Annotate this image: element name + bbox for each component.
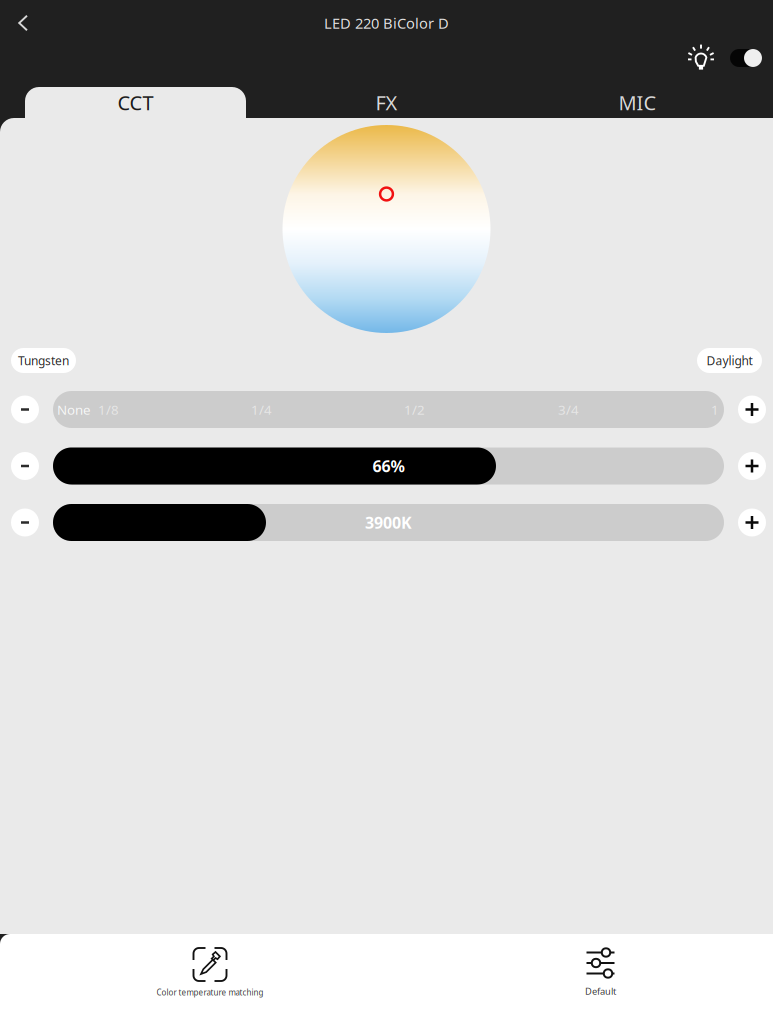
staticText: 3/4 xyxy=(558,401,579,418)
button[interactable]: Color temperature matching xyxy=(0,934,420,1030)
button[interactable]: FX xyxy=(246,87,527,118)
button[interactable]: 66% xyxy=(53,447,724,484)
staticText: FX xyxy=(375,89,397,116)
staticText: 1/8 xyxy=(98,401,119,418)
staticText: Default xyxy=(585,985,616,997)
staticText: CCT xyxy=(117,89,153,116)
staticText: 1/2 xyxy=(404,401,425,418)
button[interactable]: Light xyxy=(688,44,714,72)
staticText: Color temperature matching xyxy=(156,987,263,998)
button[interactable]: None xyxy=(53,391,724,428)
button[interactable]: Default xyxy=(420,934,773,1030)
button[interactable]: Power xyxy=(730,49,762,67)
button[interactable]: Decrease xyxy=(11,395,39,423)
button[interactable]: Decrease xyxy=(11,508,39,536)
staticText: Daylight xyxy=(706,352,752,368)
button[interactable]: Decrease xyxy=(11,452,39,480)
staticText: None xyxy=(57,401,91,418)
staticText: LED 220 BiColor D xyxy=(324,13,449,33)
button[interactable]: Increase xyxy=(738,395,766,423)
staticText: 1/4 xyxy=(251,401,272,418)
button[interactable]: 3900K xyxy=(53,504,724,541)
button[interactable]: Increase xyxy=(738,452,766,480)
staticText: 66% xyxy=(372,455,404,477)
button[interactable]: Daylight xyxy=(697,348,762,373)
button[interactable]: CCT xyxy=(25,87,246,118)
staticText: 1 xyxy=(711,401,719,418)
staticText: MIC xyxy=(618,89,656,116)
button[interactable]: Back xyxy=(0,0,46,46)
button[interactable]: Increase xyxy=(738,508,766,536)
staticText: Tungsten xyxy=(18,352,69,368)
button[interactable]: MIC xyxy=(527,87,748,118)
staticText: 3900K xyxy=(365,512,412,533)
button[interactable]: Tungsten xyxy=(11,348,76,373)
